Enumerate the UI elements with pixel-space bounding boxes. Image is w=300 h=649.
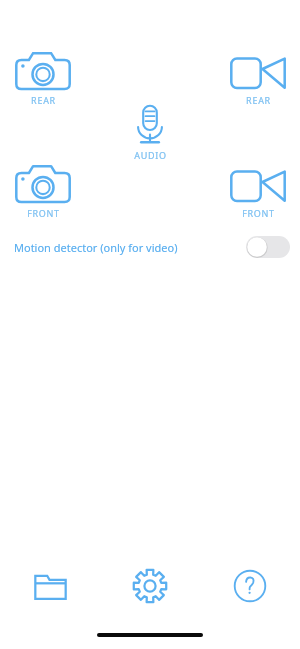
button[interactable]: Help — [200, 558, 300, 614]
staticText: Motion detector (only for video) — [14, 240, 178, 255]
staticText: AUDIO — [134, 149, 167, 161]
button[interactable]: Motion detector (only for video) — [0, 231, 300, 263]
button[interactable]: Settings — [100, 558, 200, 614]
button[interactable]: FRONT — [219, 164, 297, 219]
staticText: FRONT — [242, 207, 275, 219]
button[interactable]: REAR — [219, 51, 297, 106]
button[interactable]: Files — [0, 558, 100, 614]
button[interactable]: FRONT — [4, 164, 82, 219]
button[interactable]: AUDIO — [111, 104, 189, 161]
button[interactable]: REAR — [4, 51, 82, 106]
staticText: REAR — [246, 94, 271, 106]
staticText: REAR — [31, 94, 56, 106]
staticText: FRONT — [27, 207, 60, 219]
